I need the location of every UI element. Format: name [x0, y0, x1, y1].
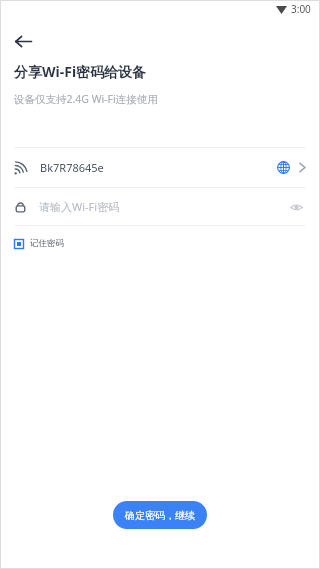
button[interactable]: Back	[6, 24, 40, 58]
staticText: 请输入Wi-Fi密码	[39, 199, 120, 214]
button[interactable]: Bk7R78645e	[0, 148, 320, 187]
staticText: 分享Wi-Fi密码给设备	[14, 62, 147, 81]
button[interactable]: 请输入Wi-Fi密码	[0, 188, 320, 225]
button[interactable]: 记住密码	[12, 235, 66, 252]
button[interactable]: Show password	[286, 197, 306, 217]
staticText: 记住密码	[30, 238, 64, 249]
button[interactable]: 确定密码，继续	[113, 501, 207, 529]
staticText: Bk7R78645e	[40, 160, 104, 175]
staticText: 3:00	[291, 2, 311, 16]
staticText: 确定密码，继续	[125, 509, 195, 522]
staticText: 设备仅支持2.4G Wi-Fi连接使用	[14, 92, 158, 106]
